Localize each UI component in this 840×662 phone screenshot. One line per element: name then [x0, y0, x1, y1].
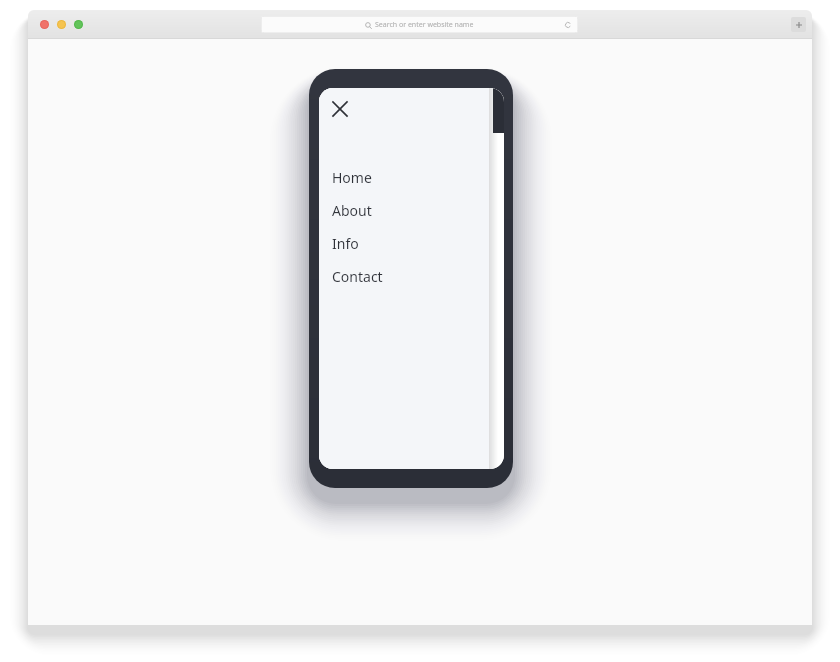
staticText: Search or enter website name [375, 20, 474, 30]
staticText: About [332, 201, 372, 220]
button[interactable]: Window control [57, 20, 66, 29]
staticText: Home [332, 168, 372, 187]
other: Reload [564, 21, 572, 29]
button[interactable]: Search or enter website name [261, 16, 578, 33]
button[interactable]: Window control [40, 20, 49, 29]
button[interactable]: Info [319, 227, 489, 260]
button[interactable]: Contact [319, 260, 489, 293]
button[interactable]: New tab [791, 17, 806, 32]
staticText: Contact [332, 267, 383, 286]
button[interactable]: Close menu [326, 95, 353, 122]
button[interactable]: Home [319, 161, 489, 194]
button[interactable]: Window control [74, 20, 83, 29]
staticText: Info [332, 234, 359, 253]
button[interactable]: About [319, 194, 489, 227]
